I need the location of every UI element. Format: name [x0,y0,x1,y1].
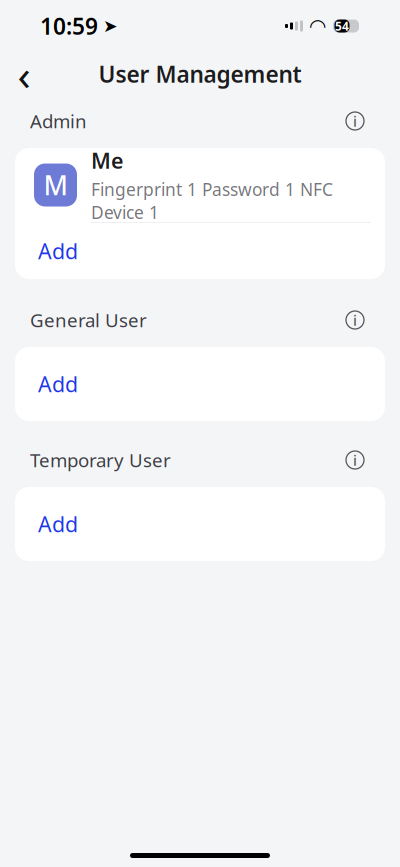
staticText: ‹ [17,46,30,102]
staticText: 10:59 [40,11,98,41]
staticText: M [43,167,67,203]
staticText: ➤ [103,16,118,36]
staticText: ◠ [310,15,325,37]
button[interactable]: About General User [340,305,370,335]
staticText: Temporary User [30,448,171,472]
button[interactable]: M [15,148,385,222]
staticText: Fingerprint 1 Password 1 NFC Device 1 [91,178,333,224]
button[interactable]: Add [15,223,385,279]
button[interactable]: About Temporary User [340,445,370,475]
staticText: i [353,450,357,470]
button[interactable]: Add [15,496,385,552]
staticText: General User [30,308,147,332]
staticText: i [353,111,357,131]
button[interactable]: Add [15,356,385,412]
staticText: Add [38,510,78,538]
staticText: 54 [335,18,349,34]
button[interactable]: Back [2,52,46,96]
staticText: Me [91,146,123,175]
staticText: Add [38,370,78,398]
staticText: User Management [98,59,301,89]
staticText: Admin [30,109,87,133]
staticText: Add [38,237,78,265]
button[interactable]: About Admin [340,106,370,136]
staticText: i [353,310,357,330]
